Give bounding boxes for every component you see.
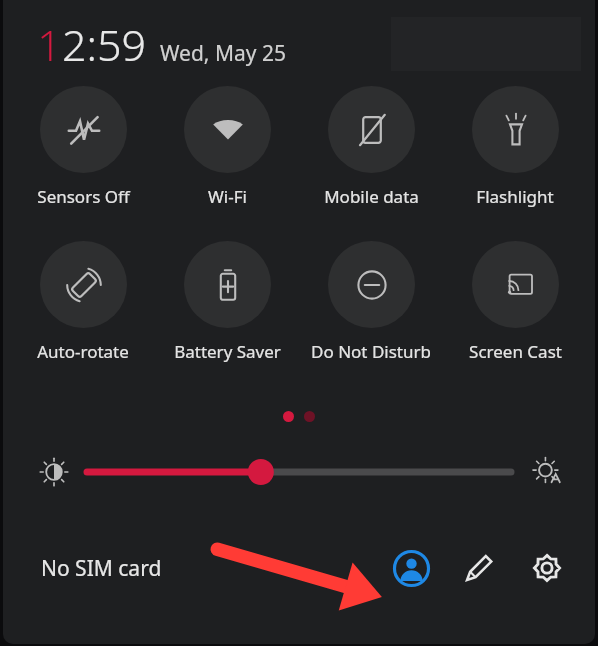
button[interactable]: Battery Saver	[155, 241, 299, 363]
button[interactable]: Auto-rotate	[11, 241, 155, 363]
button[interactable]: Screen Cast	[443, 241, 587, 363]
staticText: Auto-rotate	[37, 340, 129, 363]
staticText: Sensors Off	[37, 185, 130, 208]
staticText: Screen Cast	[469, 340, 562, 363]
button[interactable]: Brightness low	[33, 451, 75, 493]
button[interactable]: Edit	[455, 544, 503, 592]
button[interactable]: Flashlight	[443, 86, 587, 208]
button[interactable]: Settings	[523, 544, 571, 592]
staticText: 2:59	[62, 15, 147, 74]
button[interactable]: Do Not Disturb	[299, 241, 443, 363]
staticText: 1	[37, 15, 62, 74]
staticText: Mobile data	[324, 185, 419, 208]
button[interactable]: Auto brightness	[525, 450, 571, 494]
button[interactable]: Sensors Off	[11, 86, 155, 208]
button[interactable]: Wi-Fi	[155, 86, 299, 208]
staticText: Wi-Fi	[208, 185, 247, 208]
button[interactable]: User	[387, 544, 435, 592]
staticText: Do Not Disturb	[311, 340, 431, 363]
button[interactable]: No SIM card	[41, 554, 162, 583]
staticText: Battery Saver	[174, 340, 281, 363]
button[interactable]: Mobile data	[299, 86, 443, 208]
button[interactable]	[87, 457, 511, 487]
staticText: Wed, May 25	[160, 39, 286, 68]
staticText: Flashlight	[476, 185, 554, 208]
